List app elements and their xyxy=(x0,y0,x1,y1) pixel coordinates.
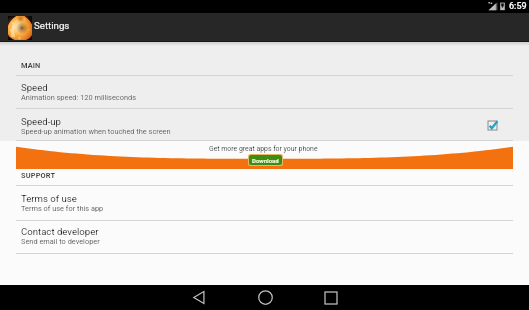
staticText: Contact developer xyxy=(21,226,99,237)
button[interactable]: Speed xyxy=(0,75,529,108)
staticText: SUPPORT xyxy=(21,171,56,180)
button[interactable]: Home xyxy=(232,285,298,310)
button[interactable]: Back xyxy=(166,285,232,310)
button[interactable]: Download xyxy=(249,155,282,165)
button[interactable]: Speed-up toggle xyxy=(488,121,497,130)
button[interactable]: Terms of use xyxy=(0,186,529,220)
staticText: Speed-up xyxy=(21,116,61,127)
staticText: MAIN xyxy=(21,61,41,70)
staticText: Settings xyxy=(34,20,70,31)
staticText: Speed xyxy=(21,82,48,93)
staticText: Speed-up animation when touched the scre… xyxy=(21,127,171,136)
staticText: Terms of use for this app xyxy=(21,204,104,213)
staticText: Animation speed: 120 milliseconds xyxy=(21,93,136,102)
staticText: Get more great apps for your phone xyxy=(209,145,318,153)
button[interactable]: Contact developer xyxy=(0,220,529,253)
button[interactable]: Recent apps xyxy=(298,285,364,310)
staticText: Terms of use xyxy=(21,193,77,204)
staticText: Send email to developer xyxy=(21,237,100,246)
button[interactable]: Speed-up xyxy=(0,109,529,140)
staticText: Download xyxy=(252,157,279,164)
staticText: 6:59 xyxy=(509,1,527,12)
